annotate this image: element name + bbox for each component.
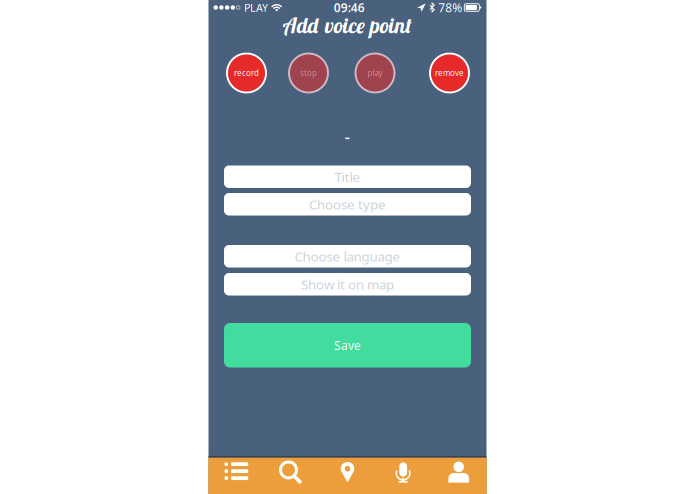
staticText: 78% bbox=[438, 0, 462, 15]
button[interactable]: stop bbox=[288, 52, 329, 93]
staticText: stop bbox=[300, 68, 317, 78]
staticText: Choose language bbox=[294, 247, 400, 265]
button[interactable]: Profile bbox=[431, 458, 486, 493]
staticText: - bbox=[344, 125, 350, 148]
button[interactable]: play bbox=[354, 52, 395, 93]
staticText: Show it on map bbox=[301, 275, 394, 293]
staticText: play bbox=[367, 68, 382, 78]
button[interactable]: Map bbox=[320, 458, 375, 493]
button[interactable]: Save bbox=[224, 323, 471, 367]
staticText: 09:46 bbox=[334, 0, 365, 15]
button[interactable]: Choose type bbox=[224, 193, 471, 215]
staticText: PLAY bbox=[244, 0, 268, 15]
staticText: Add voice point bbox=[283, 12, 411, 39]
button[interactable]: record bbox=[226, 52, 267, 93]
button[interactable]: Title bbox=[224, 165, 471, 188]
staticText: Save bbox=[334, 337, 361, 353]
staticText: Title bbox=[334, 168, 360, 186]
button[interactable]: List bbox=[208, 458, 264, 493]
button[interactable]: Show it on map bbox=[224, 273, 471, 295]
button[interactable]: Choose language bbox=[224, 245, 471, 267]
staticText: Choose type bbox=[309, 195, 386, 213]
staticText: record bbox=[234, 68, 259, 78]
button[interactable]: Voice bbox=[375, 458, 431, 493]
button[interactable]: remove bbox=[429, 52, 470, 93]
button[interactable]: Search bbox=[264, 458, 320, 493]
staticText: remove bbox=[435, 68, 464, 78]
